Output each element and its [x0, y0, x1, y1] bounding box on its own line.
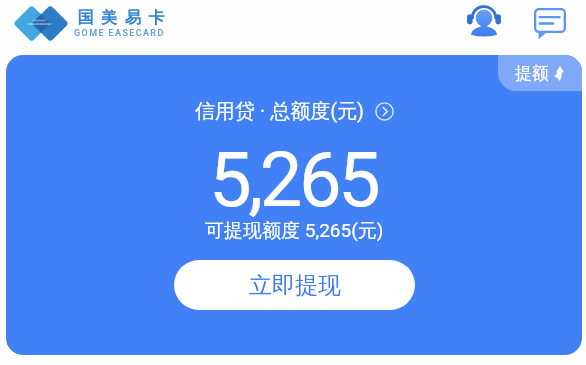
staticText: 5,265	[209, 135, 378, 224]
staticText: GOME EASECARD	[74, 28, 165, 39]
staticText: 信用贷 · 总额度(元)	[195, 99, 364, 124]
button[interactable]: Messages	[528, 1, 572, 45]
staticText: 可提现额度 5,265(元)	[205, 219, 384, 243]
button[interactable]: Customer service	[463, 1, 507, 45]
staticText: 国美易卡	[74, 8, 168, 28]
staticText: 提额	[515, 63, 549, 84]
staticText: 立即提现	[249, 271, 341, 300]
button[interactable]: 立即提现	[174, 260, 415, 310]
button[interactable]: 提额	[498, 55, 582, 91]
button[interactable]: 信用贷 · 总额度(元)	[191, 97, 398, 126]
